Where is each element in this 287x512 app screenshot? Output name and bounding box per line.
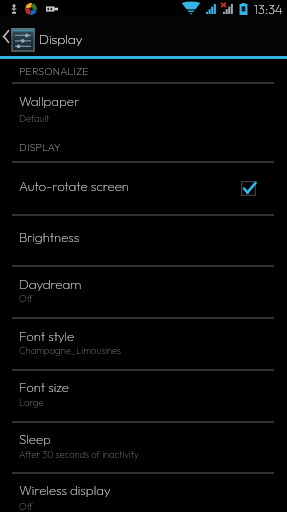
button[interactable]: Auto-rotate screen (0, 163, 287, 214)
staticText: Font size (19, 379, 69, 396)
staticText: Auto-rotate screen (19, 178, 129, 195)
button[interactable]: Navigate up to Settings (0, 17, 37, 56)
staticText: Display (39, 30, 83, 47)
staticText: Champagne_Limousines (19, 345, 122, 357)
staticText: Off (19, 501, 33, 512)
staticText: Off (19, 293, 33, 305)
staticText: 13:34 (254, 1, 283, 17)
staticText: DISPLAY (19, 140, 61, 153)
button[interactable]: Brightness (0, 216, 287, 265)
staticText: Wallpaper (19, 93, 80, 110)
button[interactable]: Daydream (0, 267, 287, 317)
button[interactable]: Font style (0, 319, 287, 369)
staticText: Large (19, 397, 44, 409)
staticText: Brightness (19, 229, 80, 246)
staticText: Sleep (19, 431, 51, 448)
staticText: PERSONALIZE (19, 64, 89, 77)
button[interactable]: Font size (0, 371, 287, 421)
button[interactable]: Wallpaper (0, 84, 287, 136)
staticText: Default (19, 113, 50, 125)
button[interactable]: Wireless display (0, 474, 287, 512)
button[interactable]: Sleep (0, 423, 287, 472)
staticText: Font style (19, 328, 75, 345)
staticText: Daydream (19, 276, 82, 293)
staticText: Wireless display (19, 482, 111, 499)
staticText: After 30 seconds of inactivity (19, 449, 139, 461)
